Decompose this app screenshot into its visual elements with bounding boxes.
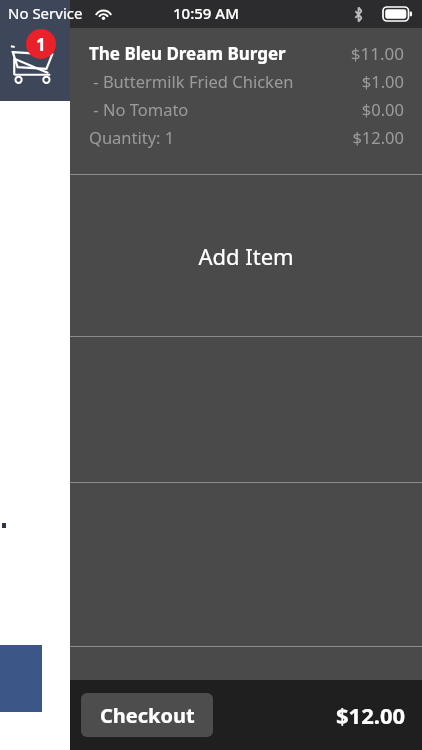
button[interactable]: Add Item bbox=[70, 175, 422, 336]
staticText: 10:59 AM bbox=[173, 3, 239, 23]
button[interactable]: Checkout bbox=[81, 693, 213, 737]
staticText: $0.00 bbox=[361, 98, 404, 120]
staticText: $12.00 bbox=[352, 126, 404, 148]
staticText: - Buttermilk Fried Chicken bbox=[89, 70, 361, 92]
staticText: 1 bbox=[36, 33, 46, 56]
staticText: $1.00 bbox=[361, 70, 404, 92]
staticText: Quantity: 1 bbox=[89, 126, 352, 148]
staticText: - No Tomato bbox=[89, 98, 361, 120]
staticText: No Service bbox=[8, 3, 83, 23]
staticText: $11.00 bbox=[350, 42, 404, 65]
staticText: Checkout bbox=[100, 702, 195, 729]
button[interactable]: The Bleu Dream Burger bbox=[70, 28, 422, 174]
staticText: The Bleu Dream Burger bbox=[89, 42, 350, 65]
button[interactable]: Cart bbox=[0, 0, 70, 101]
staticText: Add Item bbox=[198, 241, 294, 271]
staticText: $12.00 bbox=[336, 700, 406, 730]
